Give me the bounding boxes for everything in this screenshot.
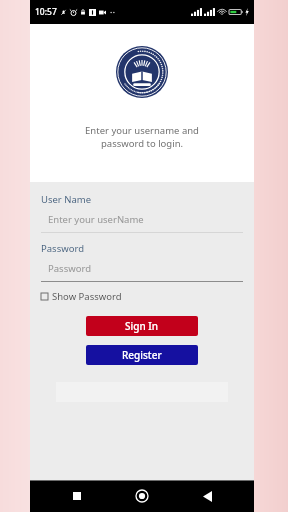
button[interactable]: Register <box>86 345 198 365</box>
button[interactable]: Home <box>131 485 153 507</box>
staticText: 10:57 <box>35 6 57 18</box>
button[interactable]: Sign In <box>86 316 198 336</box>
button[interactable]: Enter your userName <box>41 213 243 226</box>
staticText: Sign In <box>125 319 159 333</box>
staticText: Password <box>41 242 84 255</box>
staticText: User Name <box>41 193 92 206</box>
staticText: Password <box>48 262 91 275</box>
staticText: Show Password <box>52 290 122 303</box>
staticText: Enter your userName <box>48 213 144 226</box>
staticText: Register <box>122 348 162 362</box>
button[interactable]: Show Password <box>41 290 122 303</box>
staticText: Enter your username and password to logi… <box>72 124 212 150</box>
button[interactable]: Back <box>196 485 218 507</box>
button[interactable]: Password <box>41 262 243 275</box>
button[interactable]: Recent apps <box>66 485 88 507</box>
